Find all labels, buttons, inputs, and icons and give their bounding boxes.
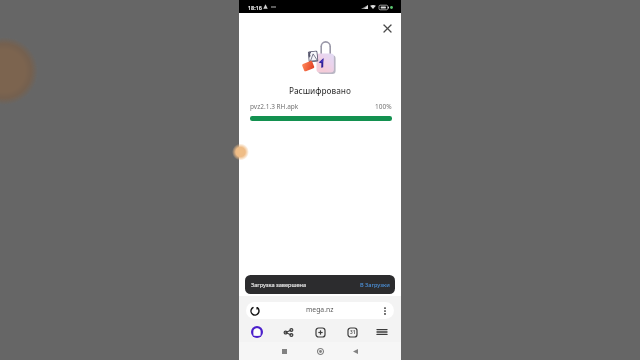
button[interactable]: Close <box>379 20 395 36</box>
staticText: mega.nz <box>306 305 334 314</box>
staticText: 100% <box>375 102 392 111</box>
button[interactable]: New tab <box>312 324 328 340</box>
button[interactable]: mega.nz <box>246 302 394 319</box>
button[interactable]: Recents <box>276 343 292 359</box>
staticText: Загрузка завершена <box>251 281 307 289</box>
button[interactable]: Home <box>312 343 328 359</box>
staticText: В Загрузки <box>360 281 390 289</box>
staticText: pvz2.1.3 RH.apk <box>250 102 299 111</box>
button[interactable]: Tabs <box>344 324 360 340</box>
staticText: 18:16 <box>248 4 262 11</box>
button[interactable]: Загрузка завершена <box>245 275 395 294</box>
button[interactable]: Alice assistant <box>249 324 265 340</box>
button[interactable]: Reload <box>248 304 262 318</box>
button[interactable]: Share <box>280 324 296 340</box>
button[interactable]: More options <box>378 304 392 318</box>
staticText: Расшифровано <box>239 85 401 96</box>
button[interactable]: Menu <box>374 324 390 340</box>
staticText: 31 <box>350 329 356 336</box>
button[interactable]: Back <box>347 343 363 359</box>
